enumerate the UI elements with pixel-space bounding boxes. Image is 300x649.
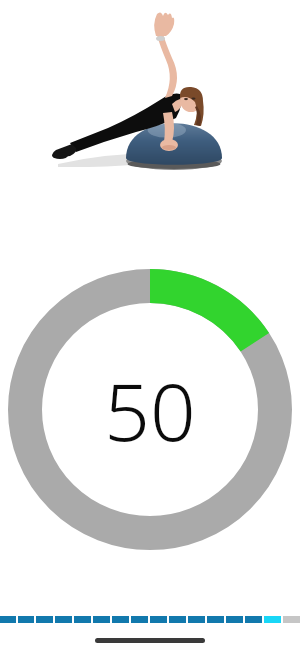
button[interactable]: Workout progress — [0, 616, 300, 623]
staticText: 50 — [104, 355, 196, 464]
button[interactable]: Exercise demonstration: side plank on BO… — [0, 0, 300, 192]
button[interactable]: 50 — [8, 269, 292, 550]
